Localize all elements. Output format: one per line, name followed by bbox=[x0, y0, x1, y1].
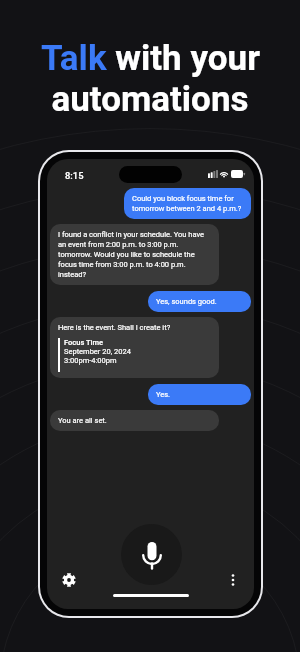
button[interactable]: I found a conflict in your schedule. You… bbox=[50, 224, 219, 285]
button[interactable]: Could you block focus time for tomorrow … bbox=[124, 188, 251, 219]
staticText: Yes. bbox=[156, 390, 171, 399]
button[interactable]: Here is the event. Shall I create it? bbox=[50, 317, 219, 378]
staticText: Focus Time bbox=[64, 338, 103, 347]
staticText: Here is the event. Shall I create it? bbox=[58, 323, 171, 332]
button[interactable]: Yes. bbox=[148, 384, 251, 405]
staticText: Talk with your bbox=[41, 38, 260, 79]
staticText: 8:15 bbox=[65, 170, 84, 181]
staticText: automations bbox=[51, 79, 249, 120]
staticText: Could you block focus time for tomorrow … bbox=[132, 194, 243, 213]
button[interactable]: Microphone bbox=[121, 524, 182, 585]
staticText: I found a conflict in your schedule. You… bbox=[58, 230, 211, 279]
button[interactable]: Yes, sounds good. bbox=[148, 291, 251, 312]
button[interactable]: Settings bbox=[57, 568, 81, 592]
staticText: September 20, 2024 bbox=[64, 347, 131, 356]
button[interactable]: You are all set. bbox=[50, 410, 219, 431]
staticText: 3:00pm-4:00pm bbox=[64, 356, 117, 365]
staticText: Yes, sounds good. bbox=[156, 297, 217, 306]
staticText: You are all set. bbox=[58, 416, 107, 425]
button[interactable]: More options bbox=[221, 568, 245, 592]
